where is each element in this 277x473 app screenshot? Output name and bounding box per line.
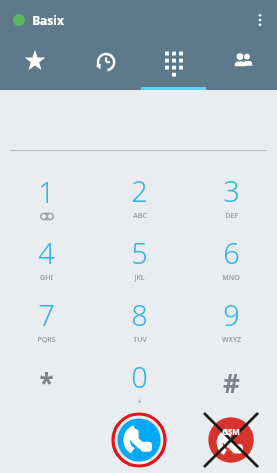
staticText: TUV — [133, 335, 147, 345]
staticText: 5 — [131, 233, 148, 272]
button[interactable]: 3 — [185, 165, 277, 227]
staticText: 8 — [131, 295, 148, 334]
staticText: JKL — [134, 273, 145, 283]
staticText: # — [223, 365, 240, 400]
button[interactable]: 0 — [93, 351, 185, 413]
button[interactable]: 8 — [93, 289, 185, 351]
button[interactable]: Favorites — [0, 40, 70, 90]
button[interactable]: GSM call disabled — [204, 413, 258, 467]
button[interactable]: # — [185, 351, 277, 413]
button[interactable]: 7 — [0, 289, 93, 351]
button[interactable]: Call — [112, 413, 166, 467]
staticText: * — [39, 365, 54, 400]
staticText: 6 — [223, 233, 240, 272]
staticText: 2 — [131, 171, 148, 210]
button[interactable]: Call history — [70, 40, 139, 90]
staticText: PQRS — [37, 335, 56, 345]
staticText: 3 — [223, 171, 240, 210]
staticText: GHI — [40, 273, 53, 283]
button[interactable]: 5 — [93, 227, 185, 289]
button[interactable]: * — [0, 351, 93, 413]
staticText: GSM — [222, 426, 240, 437]
staticText: 7 — [38, 295, 55, 334]
button[interactable]: 6 — [185, 227, 277, 289]
staticText: WXYZ — [222, 335, 241, 345]
staticText: 9 — [223, 295, 240, 334]
staticText: Basix — [32, 12, 64, 28]
staticText: 0 — [131, 357, 148, 396]
staticText: 1 — [38, 172, 55, 211]
button[interactable]: 2 — [93, 165, 185, 227]
staticText: + — [137, 397, 142, 407]
staticText: 4 — [38, 233, 55, 272]
staticText: MNO — [222, 273, 240, 283]
button[interactable]: 4 — [0, 227, 93, 289]
staticText: DEF — [225, 211, 238, 221]
button[interactable]: 9 — [185, 289, 277, 351]
button[interactable]: Contacts — [208, 40, 277, 90]
button[interactable]: 1 — [0, 165, 93, 227]
button[interactable]: Dialpad — [139, 40, 208, 90]
button[interactable]: More options — [243, 3, 277, 37]
staticText: ABC — [133, 211, 147, 221]
